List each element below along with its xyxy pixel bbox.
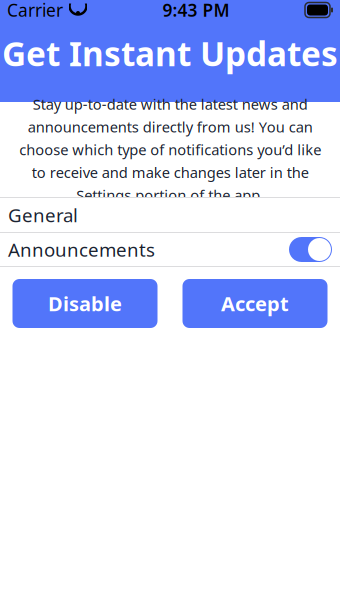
staticText: Disable [48,290,122,317]
button[interactable]: Announcements [289,237,332,262]
staticText: Carrier [7,0,63,21]
button[interactable]: Disable [12,279,157,328]
staticText: Stay up-to-date with the latest news and… [19,94,321,205]
staticText: General [8,203,78,227]
staticText: Get Instant Updates [2,31,338,75]
staticText: Accept [221,290,289,317]
button[interactable]: Accept [182,279,327,328]
staticText: Announcements [8,237,155,262]
staticText: 9:43 PM [162,0,229,21]
